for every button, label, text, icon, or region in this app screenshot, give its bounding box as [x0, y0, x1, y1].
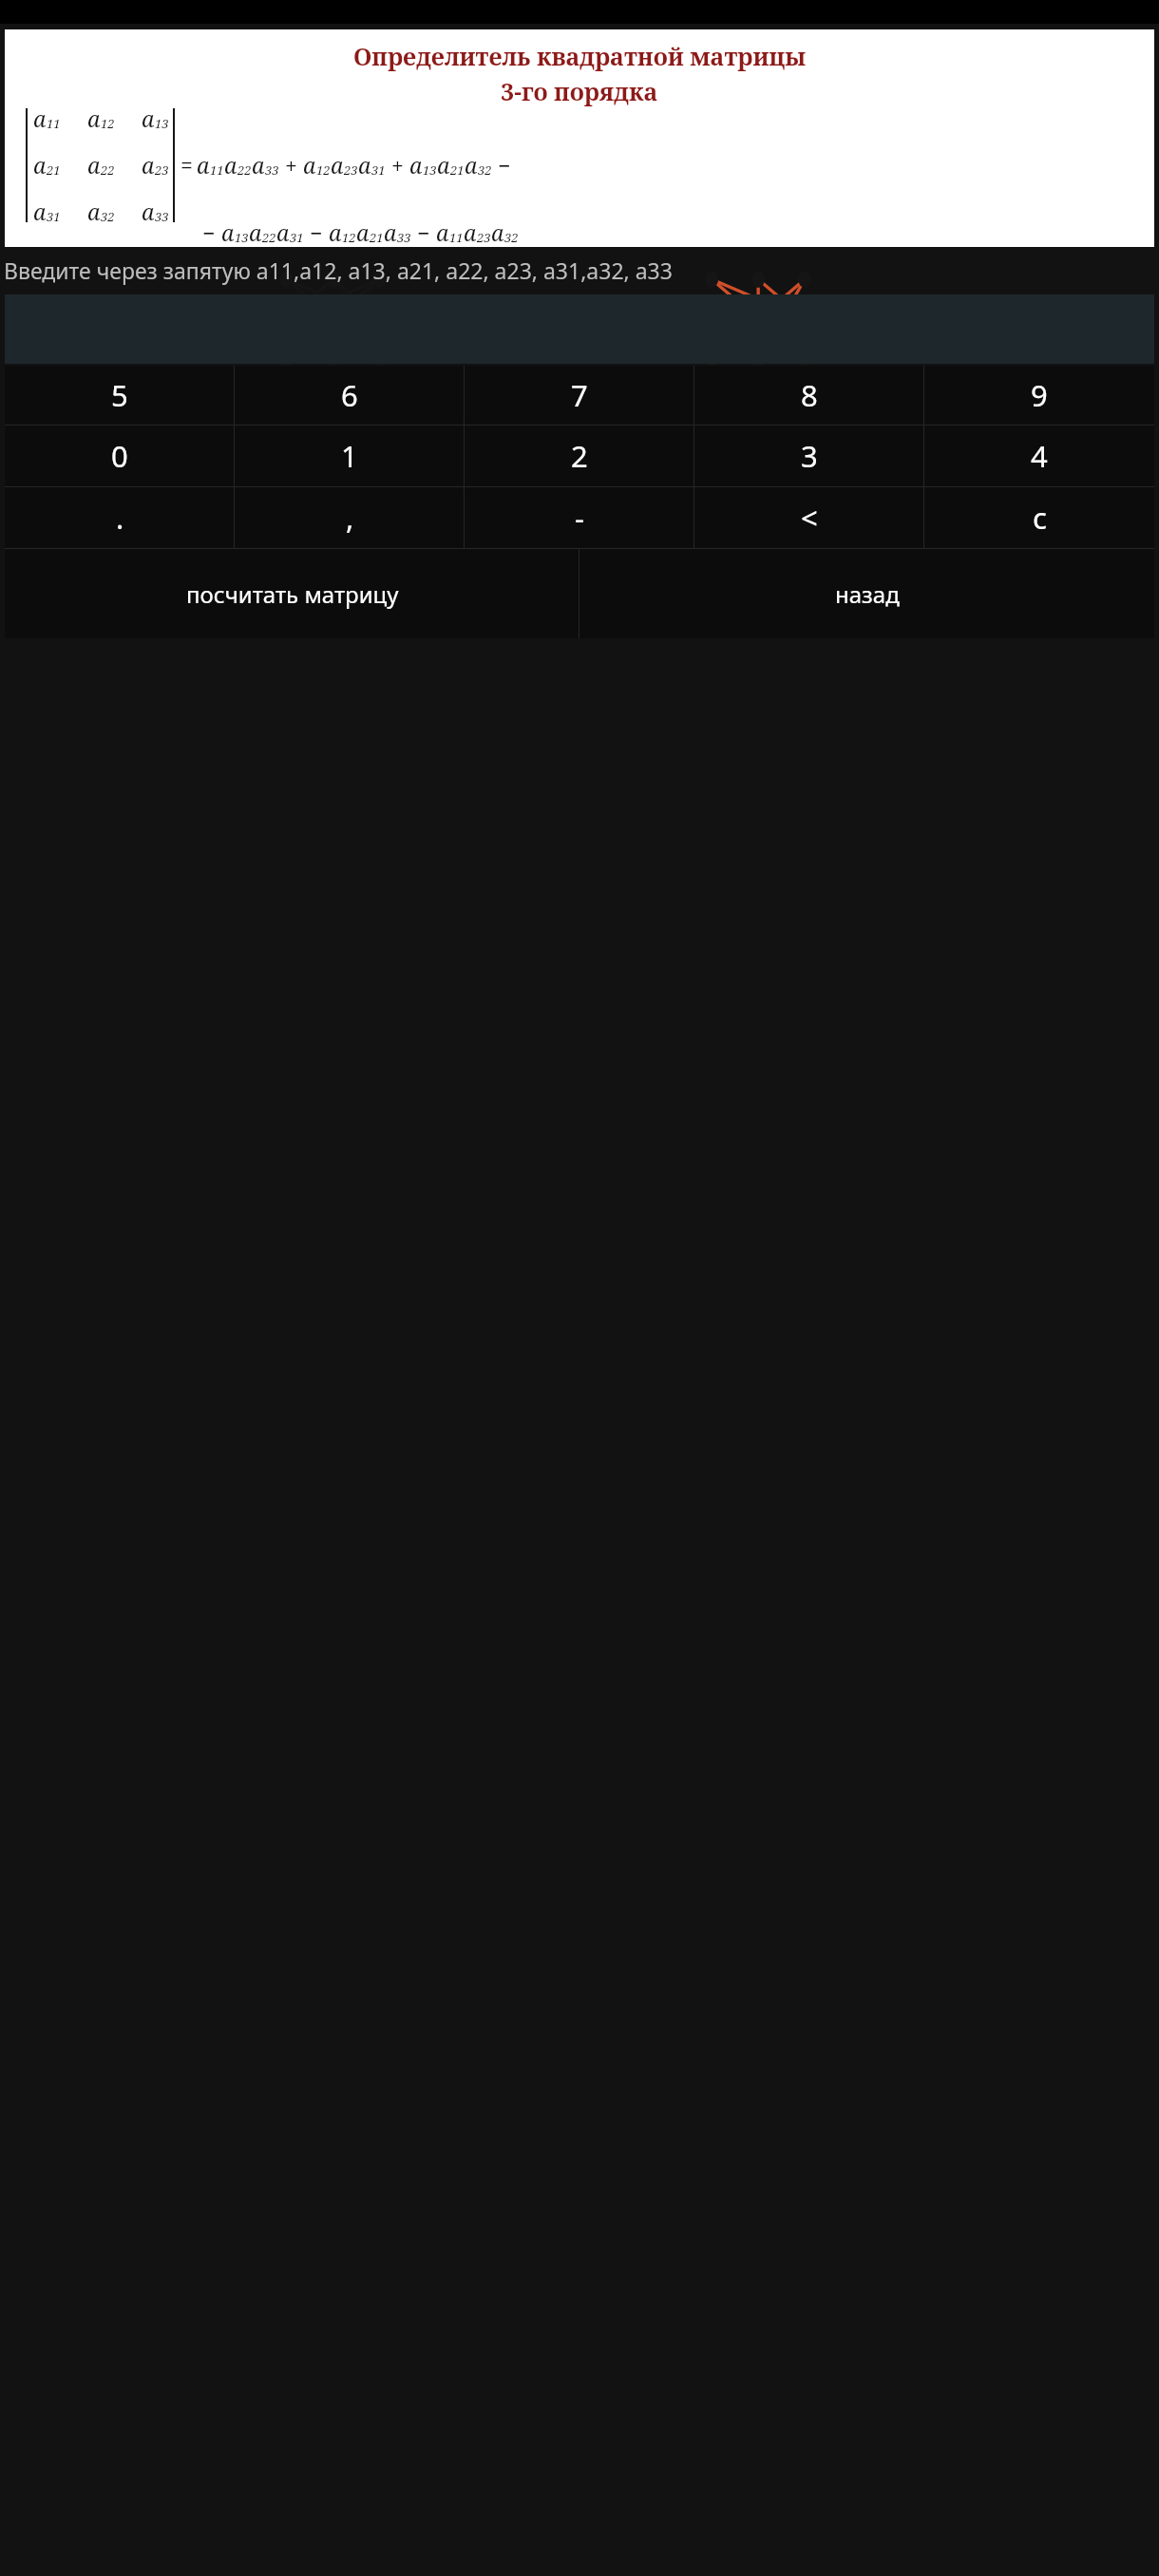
button[interactable]: . [5, 487, 235, 548]
staticText: 13 [235, 229, 249, 246]
staticText: a [221, 218, 235, 247]
staticText: 6 [341, 375, 358, 415]
staticText: 31 [371, 161, 386, 179]
staticText: 13 [155, 115, 169, 132]
staticText: a [436, 218, 449, 247]
button[interactable]: , [235, 487, 465, 548]
staticText: 12 [101, 115, 115, 132]
staticText: + [279, 150, 303, 180]
staticText: a [331, 150, 344, 180]
button[interactable]: 8 [694, 366, 924, 425]
staticText: a [87, 197, 101, 226]
staticText: 13 [423, 161, 437, 179]
staticText: 33 [155, 208, 169, 225]
staticText: Определитель квадратной матрицы [353, 40, 807, 72]
staticText: a [224, 150, 237, 180]
staticText: 33 [397, 229, 411, 246]
staticText: a [142, 104, 155, 133]
staticText: 8 [801, 375, 818, 415]
staticText: 0 [111, 436, 128, 476]
staticText: a [329, 218, 342, 247]
staticText: a [276, 218, 290, 247]
button[interactable]: назад [579, 549, 1154, 638]
button[interactable]: 0 [5, 426, 235, 486]
staticText: посчитать матрицу [186, 578, 399, 610]
staticText: a [465, 150, 478, 180]
staticText: назад [835, 578, 900, 610]
staticText: a [409, 150, 423, 180]
staticText: 3 [801, 436, 818, 476]
staticText: , [346, 498, 354, 538]
staticText: 11 [210, 161, 224, 179]
staticText: 22 [237, 161, 252, 179]
staticText: a [33, 104, 47, 133]
button[interactable]: 9 [924, 366, 1154, 425]
button[interactable]: 3 [694, 426, 924, 486]
staticText: Введите через запятую a11,a12, a13, a21,… [4, 256, 673, 285]
staticText: a [87, 104, 101, 133]
staticText: a [437, 150, 450, 180]
staticText: 11 [449, 229, 464, 246]
staticText: 23 [155, 161, 169, 179]
staticText: a [33, 197, 47, 226]
staticText: a [303, 150, 316, 180]
button[interactable] [5, 294, 1154, 364]
staticText: a [252, 150, 265, 180]
staticText: a [358, 150, 371, 180]
staticText: 32 [478, 161, 492, 179]
staticText: − [202, 218, 221, 247]
staticText: < [801, 498, 818, 538]
staticText: − [492, 150, 511, 180]
staticText: 1 [341, 436, 358, 476]
staticText: a [33, 150, 47, 180]
staticText: a [464, 218, 477, 247]
staticText: a [87, 150, 101, 180]
button[interactable]: c [924, 487, 1154, 548]
staticText: = [180, 150, 193, 180]
staticText: 23 [477, 229, 491, 246]
button[interactable]: < [694, 487, 924, 548]
staticText: 23 [344, 161, 358, 179]
staticText: 32 [504, 229, 519, 246]
staticText: a [142, 150, 155, 180]
button[interactable]: 6 [235, 366, 465, 425]
staticText: 32 [101, 208, 115, 225]
staticText: 33 [265, 161, 279, 179]
staticText: 3-го порядка [501, 75, 658, 107]
staticText: 31 [290, 229, 304, 246]
staticText: 7 [571, 375, 588, 415]
staticText: 5 [111, 375, 128, 415]
staticText: a [384, 218, 397, 247]
staticText: a [249, 218, 262, 247]
staticText: . [116, 498, 124, 538]
button[interactable]: - [465, 487, 694, 548]
staticText: − [304, 218, 329, 247]
staticText: 31 [47, 208, 61, 225]
staticText: 21 [450, 161, 465, 179]
staticText: 11 [47, 115, 61, 132]
button[interactable]: 4 [924, 426, 1154, 486]
staticText: 12 [316, 161, 331, 179]
staticText: + [386, 150, 409, 180]
staticText: 9 [1031, 375, 1048, 415]
staticText: 12 [342, 229, 356, 246]
staticText: 21 [370, 229, 384, 246]
staticText: 22 [101, 161, 115, 179]
staticText: 22 [262, 229, 276, 246]
staticText: a [197, 150, 210, 180]
staticText: − [411, 218, 436, 247]
button[interactable]: 2 [465, 426, 694, 486]
staticText: 2 [571, 436, 588, 476]
staticText: 4 [1031, 436, 1048, 476]
staticText: a [142, 197, 155, 226]
staticText: 21 [47, 161, 61, 179]
button[interactable]: 5 [5, 366, 235, 425]
button[interactable]: 7 [465, 366, 694, 425]
staticText: c [1033, 498, 1047, 538]
staticText: a [356, 218, 370, 247]
staticText: a [491, 218, 504, 247]
staticText: - [575, 498, 584, 538]
button[interactable]: 1 [235, 426, 465, 486]
button[interactable]: посчитать матрицу [5, 549, 579, 638]
